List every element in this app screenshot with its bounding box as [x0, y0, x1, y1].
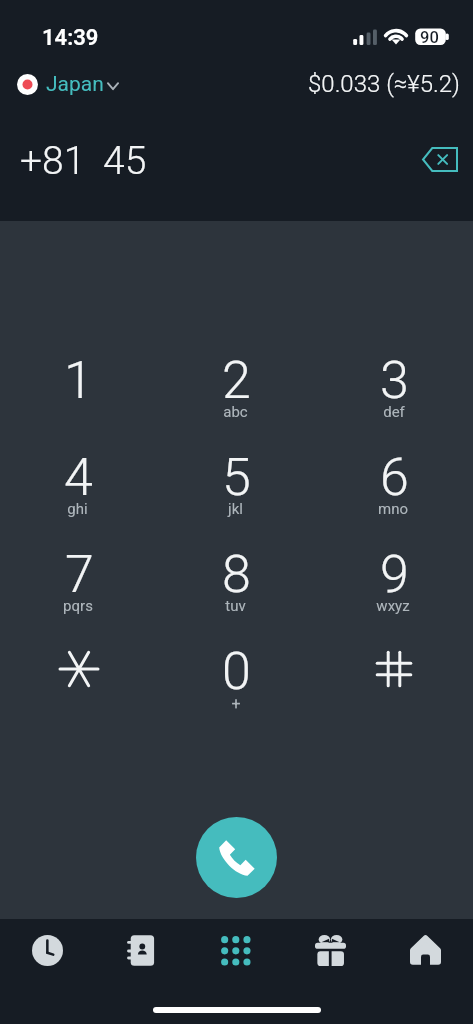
staticText: mno	[378, 500, 408, 518]
staticText: +81	[20, 138, 86, 184]
button[interactable]: Home	[378, 919, 473, 981]
staticText: 5	[222, 447, 251, 508]
button[interactable]: 7	[0, 544, 157, 623]
staticText: 2	[222, 350, 251, 411]
button[interactable]: 5	[157, 447, 315, 526]
button[interactable]: Japan	[17, 72, 119, 97]
button[interactable]: 9	[315, 544, 473, 623]
staticText: def	[383, 403, 405, 421]
staticText: 45	[103, 138, 147, 184]
staticText: tuv	[225, 597, 246, 615]
staticText: 1	[64, 350, 93, 411]
button[interactable]: 2	[157, 350, 315, 429]
staticText: Japan	[46, 72, 104, 97]
staticText: 90	[420, 28, 439, 47]
button[interactable]: 8	[157, 544, 315, 623]
staticText: jkl	[228, 500, 243, 518]
button[interactable]: Contacts	[94, 919, 188, 981]
staticText: 14:39	[42, 25, 99, 51]
button[interactable]: 0	[157, 641, 315, 721]
button[interactable]: 6	[315, 447, 473, 526]
button[interactable]: Backspace	[415, 136, 465, 186]
staticText: abc	[223, 403, 248, 421]
button[interactable]: 3	[315, 350, 473, 429]
staticText: pqrs	[63, 597, 93, 615]
button[interactable]: Recents	[0, 919, 94, 981]
staticText: 7	[65, 544, 94, 605]
button[interactable]: Rewards	[283, 919, 378, 981]
staticText: 6	[380, 447, 409, 508]
staticText: 8	[222, 544, 251, 605]
staticText: ghi	[67, 500, 88, 518]
button[interactable]: 4	[0, 447, 157, 526]
button[interactable]: 1	[0, 350, 157, 411]
staticText: +	[231, 694, 241, 713]
staticText: wxyz	[376, 597, 410, 615]
staticText: 3	[380, 350, 409, 411]
button[interactable]: Pound	[315, 641, 473, 681]
button[interactable]: Star	[0, 641, 157, 681]
staticText: $0.033 (≈¥5.2)	[308, 70, 460, 98]
button[interactable]: Keypad	[188, 919, 283, 981]
button[interactable]: Call	[196, 817, 277, 898]
staticText: 9	[380, 544, 409, 605]
staticText: 0	[222, 641, 251, 702]
staticText: 4	[64, 447, 93, 508]
